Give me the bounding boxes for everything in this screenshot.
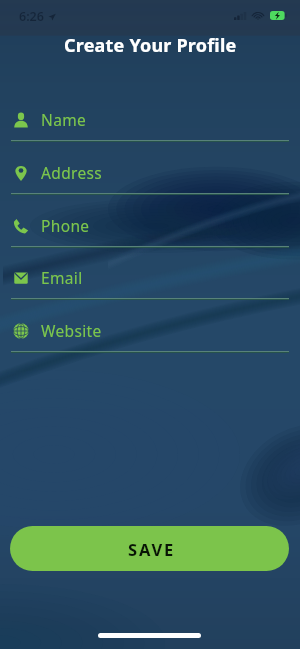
staticText: SAVE xyxy=(128,538,176,560)
button[interactable]: Name xyxy=(0,87,300,140)
button[interactable]: Website xyxy=(0,298,300,351)
staticText: Email xyxy=(41,267,83,288)
staticText: Website xyxy=(41,320,102,341)
button[interactable]: Email xyxy=(0,245,300,298)
staticText: Create Your Profile xyxy=(64,33,237,58)
staticText: Address xyxy=(41,162,103,183)
staticText: Name xyxy=(41,109,87,130)
button[interactable]: Phone xyxy=(0,193,300,246)
button[interactable]: SAVE xyxy=(10,526,289,571)
button[interactable]: Address xyxy=(0,140,300,193)
staticText: Phone xyxy=(41,215,90,236)
staticText: 6:26 xyxy=(19,8,44,25)
